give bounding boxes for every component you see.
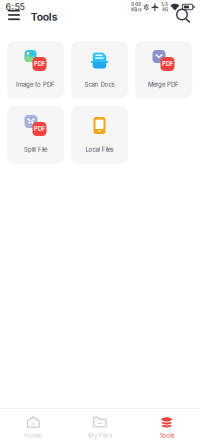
- staticText: Image to PDF: [16, 81, 55, 88]
- staticText: 0.00: [131, 2, 141, 7]
- staticText: 6:55: [5, 2, 24, 12]
- staticText: Tools: [31, 11, 58, 23]
- staticText: Scan Docs: [84, 81, 114, 88]
- staticText: Tools: [159, 432, 174, 439]
- button[interactable]: Home: [0, 409, 67, 446]
- staticText: PDF: [34, 125, 45, 132]
- staticText: Split File: [24, 146, 47, 153]
- button[interactable]: Menu: [4, 6, 24, 26]
- staticText: Home: [24, 432, 42, 439]
- button[interactable]: Local Files: [71, 106, 128, 164]
- button[interactable]: PDF: [135, 41, 192, 99]
- staticText: PDF: [162, 60, 173, 67]
- staticText: Local Files: [85, 146, 113, 153]
- button[interactable]: PDF: [7, 41, 64, 99]
- button[interactable]: Tools: [133, 409, 200, 446]
- staticText: 1/3: [161, 2, 168, 7]
- button[interactable]: Search: [176, 8, 192, 24]
- button[interactable]: Scan Docs: [71, 41, 128, 99]
- staticText: Merge PDF: [148, 81, 179, 88]
- staticText: KB/s: [131, 7, 141, 12]
- staticText: PDF: [34, 60, 45, 67]
- button[interactable]: PDF: [7, 106, 64, 164]
- staticText: My Files: [88, 432, 112, 439]
- button[interactable]: My Files: [67, 409, 133, 446]
- staticText: 4G: [162, 7, 168, 12]
